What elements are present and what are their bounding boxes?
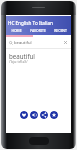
staticText: FAVORITE — [30, 28, 46, 33]
staticText: RECENT — [54, 28, 67, 33]
button[interactable]: Pronounce — [30, 111, 38, 119]
staticText: beautiful — [9, 52, 35, 60]
button[interactable]: beautiful — [6, 37, 71, 48]
staticText: beautiful — [14, 40, 32, 46]
staticText: HOME — [11, 28, 22, 33]
staticText: /ˈbjuːtɪf(ə)l/ — [9, 59, 28, 64]
button[interactable]: Add to favorites — [20, 111, 28, 119]
button[interactable]: FAVORITE — [27, 26, 49, 35]
button[interactable]: HOME — [6, 26, 27, 35]
button[interactable]: Bookmark — [50, 111, 58, 119]
button[interactable]: RECENT — [49, 26, 71, 35]
staticText: HC English To Italian Dictionary — [8, 20, 73, 26]
button[interactable]: Clear search — [63, 40, 68, 45]
button[interactable]: Share — [40, 111, 48, 119]
